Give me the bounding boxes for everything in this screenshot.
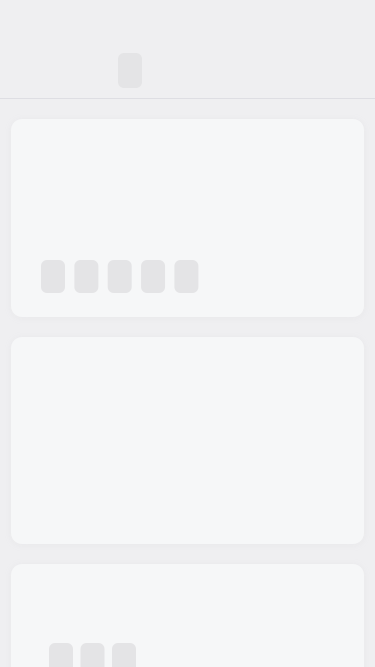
button[interactable]: Loading item (11, 119, 364, 317)
button[interactable]: Loading item (11, 564, 364, 667)
